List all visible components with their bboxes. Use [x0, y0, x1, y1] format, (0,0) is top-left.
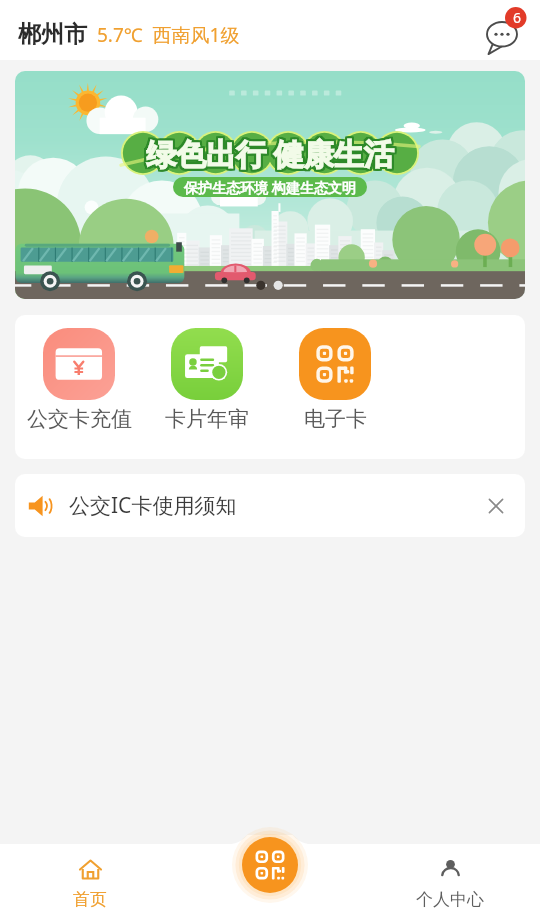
staticText: 绿色出行 健康生活 — [148, 134, 396, 175]
staticText: 公交卡充值 — [27, 406, 132, 432]
staticText: 绿色出行 健康生活 — [147, 131, 395, 172]
button[interactable]: Scan QR code — [242, 837, 298, 893]
staticText: 绿色出行 健康生活 — [145, 135, 393, 176]
button[interactable]: Banner: green travel, healthy life — [15, 71, 525, 299]
staticText: 郴州市 — [18, 20, 87, 49]
staticText: 5.7℃ 西南风1级 — [97, 22, 240, 48]
button[interactable]: 公交卡充值 — [15, 328, 143, 432]
staticText: 个人中心 — [416, 889, 484, 910]
button[interactable]: 首页 — [0, 826, 180, 921]
button[interactable]: Close notice — [481, 491, 511, 521]
staticText: 首页 — [73, 889, 107, 910]
button[interactable]: 电子卡 — [271, 328, 399, 432]
staticText: 绿色出行 健康生活 — [145, 133, 393, 174]
staticText: 绿色出行 健康生活 — [146, 134, 394, 175]
staticText: 绿色出行 健康生活 — [147, 132, 395, 173]
staticText: 绿色出行 健康生活 — [144, 134, 392, 175]
staticText: 绿色出行 健康生活 — [144, 131, 392, 172]
staticText: 绿色出行 健康生活 — [145, 131, 393, 172]
button[interactable]: 公交IC卡使用须知 — [15, 474, 525, 537]
staticText: 绿色出行 健康生活 — [148, 135, 396, 176]
button[interactable]: 卡片年审 — [143, 328, 271, 432]
staticText: 绿色出行 健康生活 — [146, 135, 394, 176]
staticText: 公交IC卡使用须知 — [69, 491, 237, 520]
staticText: 绿色出行 健康生活 — [148, 133, 396, 174]
button[interactable]: Messages — [480, 5, 530, 55]
staticText: 卡片年审 — [165, 406, 249, 432]
staticText: 保护生态环境 构建生态文明 — [184, 178, 356, 197]
staticText: 绿色出行 健康生活 — [148, 131, 396, 172]
staticText: 绿色出行 健康生活 — [144, 135, 392, 176]
staticText: 绿色出行 健康生活 — [144, 132, 392, 173]
staticText: 6 — [513, 8, 522, 27]
button[interactable]: 个人中心 — [360, 826, 540, 921]
staticText: 绿色出行 健康生活 — [146, 132, 394, 173]
staticText: 绿色出行 健康生活 — [146, 133, 394, 174]
staticText: 绿色出行 健康生活 — [145, 134, 393, 175]
staticText: 绿色出行 健康生活 — [145, 132, 393, 173]
staticText: 绿色出行 健康生活 — [147, 133, 395, 174]
staticText: 绿色出行 健康生活 — [147, 135, 395, 176]
staticText: 绿色出行 健康生活 — [144, 133, 392, 174]
staticText: 绿色出行 健康生活 — [148, 132, 396, 173]
staticText: 绿色出行 健康生活 — [147, 134, 395, 175]
staticText: 电子卡 — [304, 406, 367, 432]
staticText: 绿色出行 健康生活 — [146, 131, 394, 172]
